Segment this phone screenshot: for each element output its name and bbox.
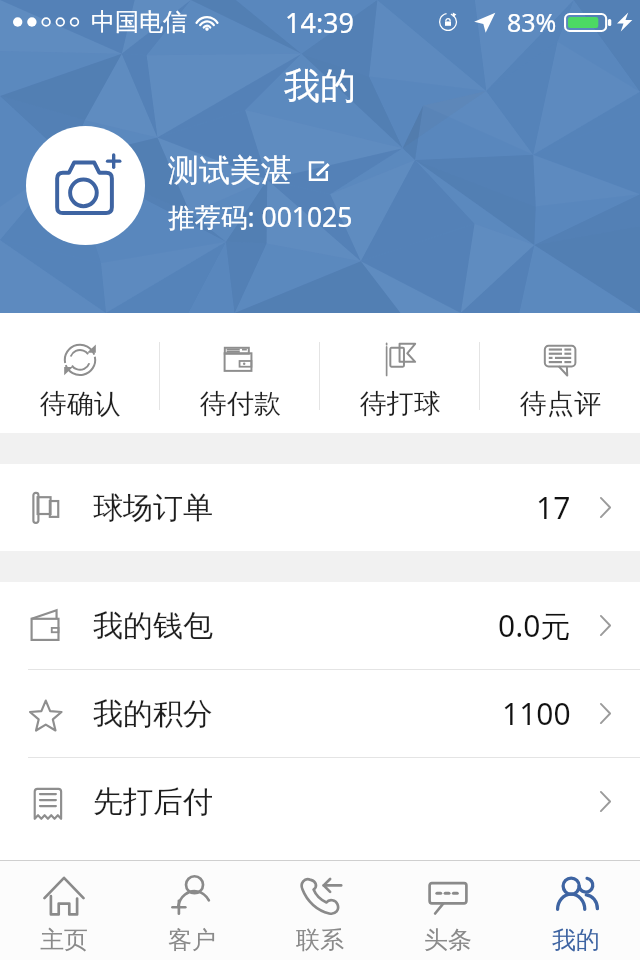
staticText: 我的 xyxy=(552,925,600,955)
staticText: 17 xyxy=(536,487,571,528)
staticText: 待付款 xyxy=(200,387,281,421)
staticText: 中国电信 xyxy=(91,7,187,37)
staticText: 我的积分 xyxy=(93,695,213,733)
button[interactable]: 联系 xyxy=(256,861,384,960)
staticText: 待点评 xyxy=(520,387,601,421)
button[interactable]: 先打后付 xyxy=(0,758,640,845)
staticText: 待打球 xyxy=(360,387,441,421)
button[interactable]: 我的 xyxy=(512,861,640,960)
staticText: 联系 xyxy=(296,925,344,955)
staticText: 0.0元 xyxy=(498,605,571,646)
staticText: 先打后付 xyxy=(93,783,213,821)
staticText: 客户 xyxy=(168,925,216,955)
staticText: 推荐码: 001025 xyxy=(168,199,353,235)
staticText: 球场订单 xyxy=(93,489,213,527)
button[interactable]: 待打球 xyxy=(320,313,480,433)
button[interactable]: 我的积分 xyxy=(0,670,640,757)
button[interactable]: 主页 xyxy=(0,861,128,960)
button[interactable]: 待付款 xyxy=(160,313,320,433)
staticText: 我的钱包 xyxy=(93,607,213,645)
button[interactable]: 客户 xyxy=(128,861,256,960)
button[interactable]: 我的钱包 xyxy=(0,582,640,669)
staticText: 83% xyxy=(507,5,557,39)
button[interactable]: 待点评 xyxy=(480,313,640,433)
button[interactable]: 头条 xyxy=(384,861,512,960)
button[interactable]: 待确认 xyxy=(0,313,160,433)
staticText: 主页 xyxy=(40,925,88,955)
staticText: 我的 xyxy=(284,63,356,108)
button[interactable]: Edit profile name xyxy=(306,159,332,183)
staticText: 1100 xyxy=(502,693,571,734)
staticText: 待确认 xyxy=(40,387,121,421)
staticText: 头条 xyxy=(424,925,472,955)
staticText: 14:39 xyxy=(285,4,355,41)
button[interactable]: Change avatar xyxy=(26,126,145,245)
staticText: 测试美湛 xyxy=(168,151,292,190)
button[interactable]: 球场订单 xyxy=(0,464,640,551)
